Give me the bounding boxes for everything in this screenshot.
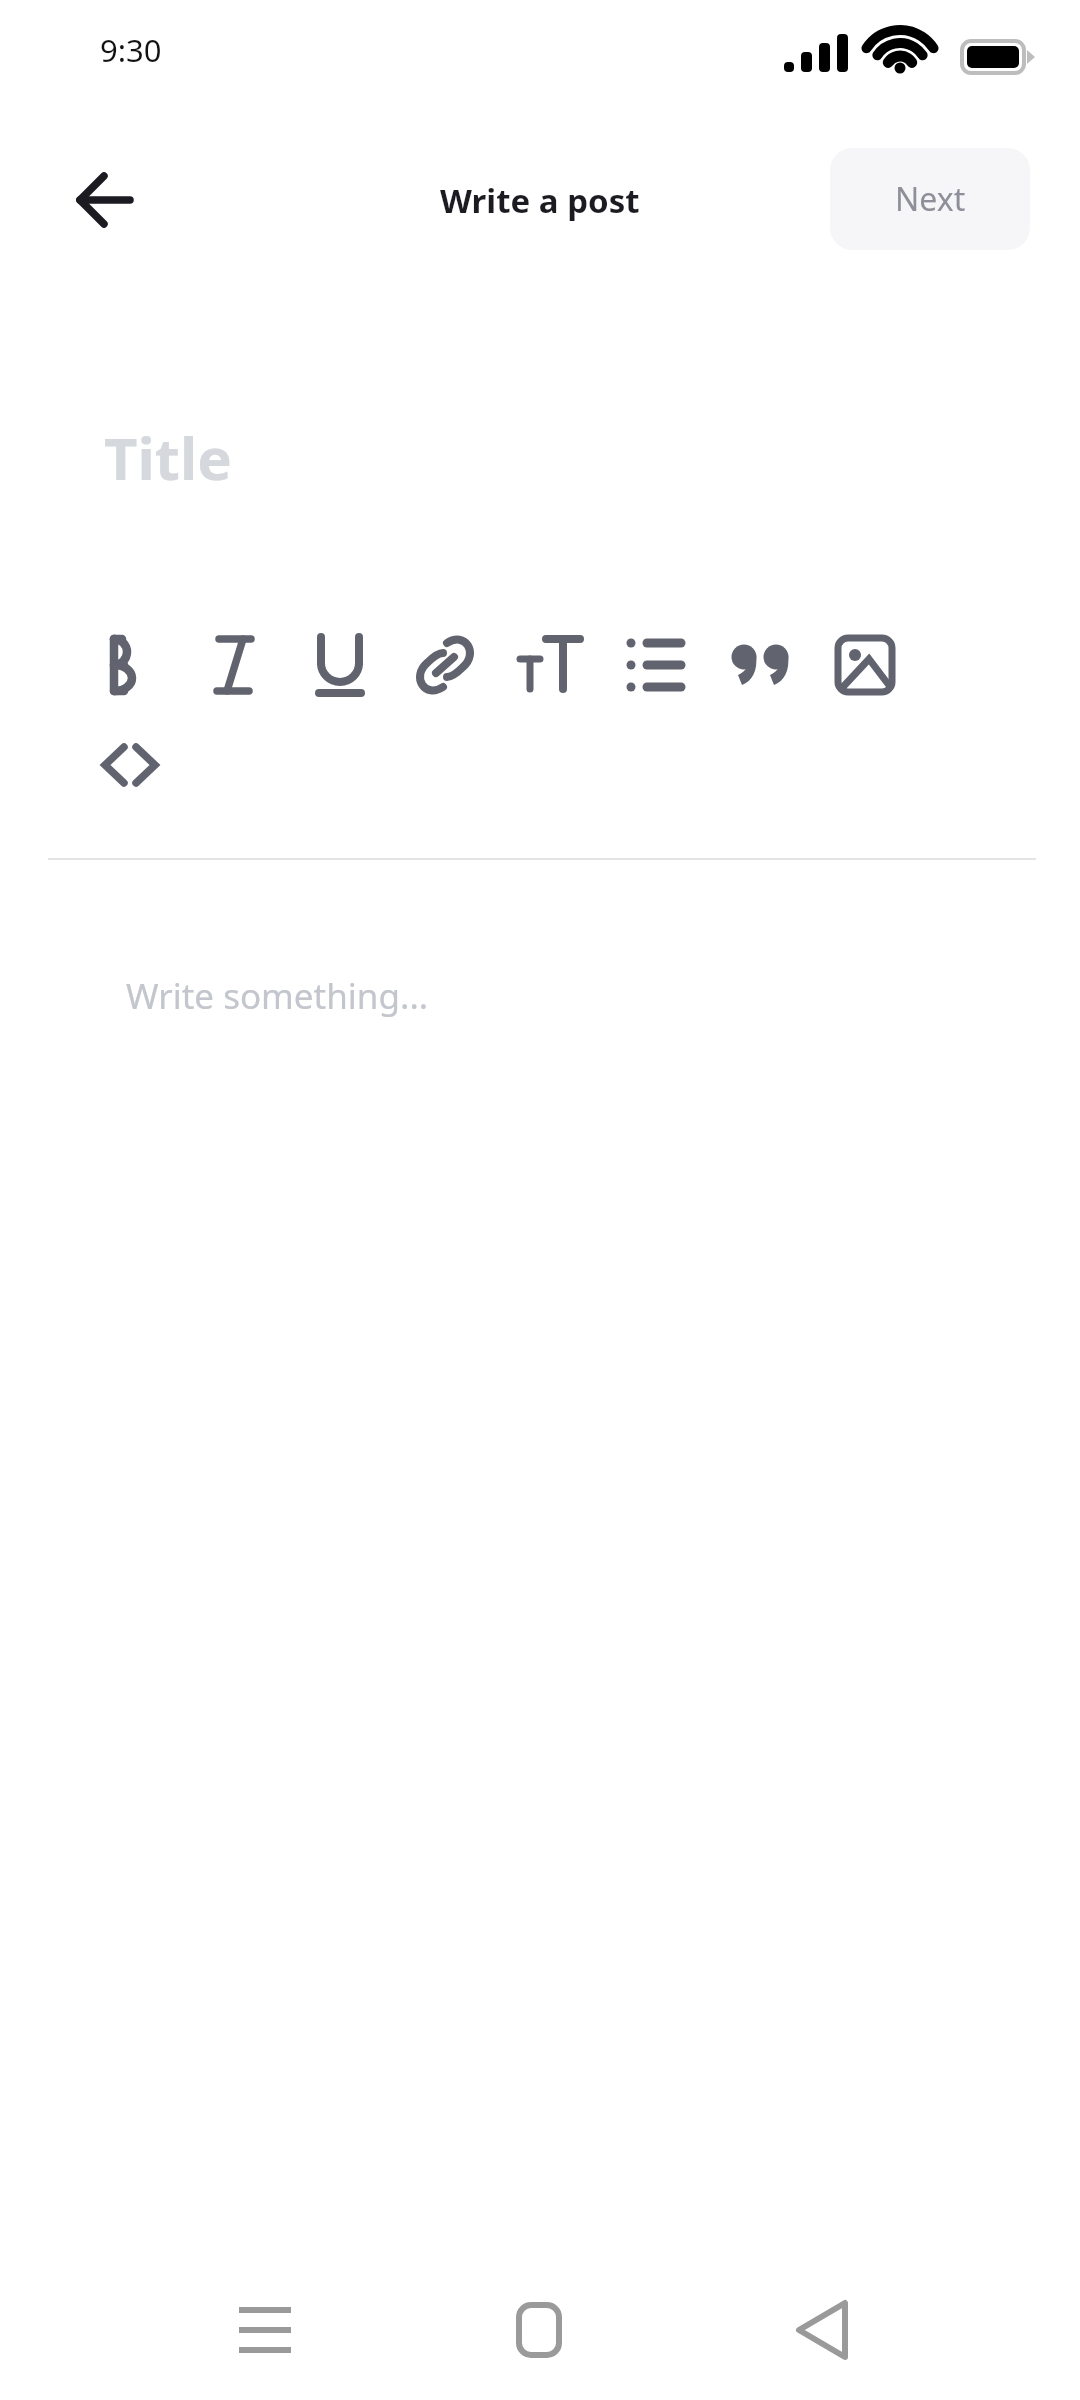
button[interactable]: Quote — [720, 625, 800, 705]
button[interactable]: Next — [830, 148, 1030, 250]
staticText: Write a post — [440, 178, 640, 223]
button[interactable]: Underline — [300, 625, 380, 705]
button[interactable]: Image — [825, 625, 905, 705]
button[interactable]: Back — [765, 2270, 885, 2390]
button[interactable]: Title — [0, 410, 1080, 540]
staticText: Next — [895, 177, 966, 221]
button[interactable]: Link — [405, 625, 485, 705]
button[interactable]: Italic — [195, 625, 275, 705]
button[interactable]: Text size — [510, 625, 590, 705]
button[interactable]: Back — [60, 155, 150, 245]
button[interactable]: Home — [479, 2270, 599, 2390]
button[interactable]: Recent apps — [205, 2270, 325, 2390]
staticText: Title — [104, 418, 232, 497]
button[interactable]: Bulleted list — [615, 625, 695, 705]
button[interactable]: Bold — [90, 625, 170, 705]
staticText: Write something... — [126, 972, 429, 1020]
button[interactable]: Code block — [90, 725, 170, 805]
staticText: 9:30 — [100, 29, 162, 71]
